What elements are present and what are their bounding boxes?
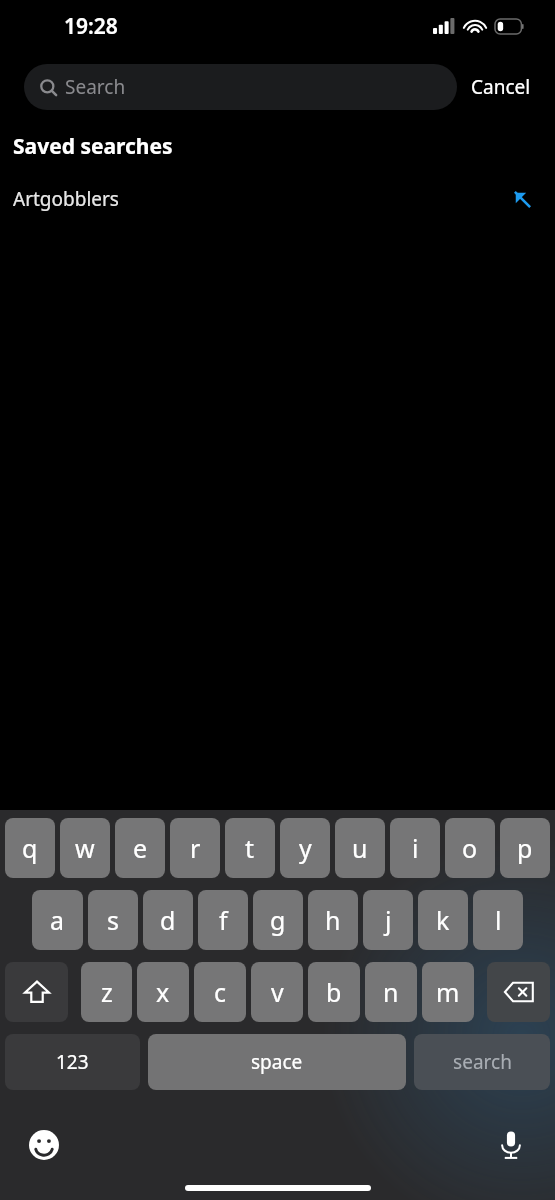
staticText: v xyxy=(271,975,284,1009)
staticText: b xyxy=(326,975,342,1009)
button[interactable]: q xyxy=(5,818,55,878)
button[interactable]: Backspace xyxy=(487,962,550,1022)
staticText: search xyxy=(453,1049,512,1075)
staticText: n xyxy=(383,975,399,1009)
button[interactable]: 123 xyxy=(5,1034,140,1090)
staticText: q xyxy=(22,831,38,865)
staticText: k xyxy=(436,903,450,937)
button[interactable]: w xyxy=(60,818,110,878)
staticText: x xyxy=(156,975,170,1009)
button[interactable]: r xyxy=(170,818,220,878)
button[interactable]: c xyxy=(194,962,246,1022)
staticText: o xyxy=(462,831,478,865)
button[interactable]: j xyxy=(363,890,413,950)
staticText: r xyxy=(190,831,201,865)
staticText: t xyxy=(245,831,255,865)
button[interactable]: x xyxy=(137,962,189,1022)
staticText: h xyxy=(325,903,341,937)
staticText: y xyxy=(299,831,312,865)
button[interactable]: g xyxy=(253,890,303,950)
staticText: s xyxy=(107,903,119,937)
button[interactable]: n xyxy=(365,962,417,1022)
button[interactable]: s xyxy=(88,890,138,950)
button[interactable]: b xyxy=(308,962,360,1022)
staticText: c xyxy=(214,975,227,1009)
staticText: g xyxy=(270,903,286,937)
button[interactable]: p xyxy=(500,818,550,878)
staticText: a xyxy=(50,903,65,937)
button[interactable]: l xyxy=(473,890,523,950)
button[interactable]: a xyxy=(32,890,83,950)
button[interactable]: k xyxy=(418,890,468,950)
button[interactable]: h xyxy=(308,890,358,950)
staticText: Search xyxy=(65,74,126,100)
staticText: space xyxy=(251,1049,303,1075)
staticText: f xyxy=(219,903,228,937)
button[interactable]: t xyxy=(225,818,275,878)
staticText: w xyxy=(75,831,95,865)
button[interactable]: Search xyxy=(24,64,457,110)
staticText: l xyxy=(495,903,502,937)
button[interactable]: Artgobblers xyxy=(0,173,555,225)
button[interactable]: m xyxy=(422,962,474,1022)
staticText: Artgobblers xyxy=(13,186,119,212)
staticText: e xyxy=(133,831,148,865)
staticText: Cancel xyxy=(471,74,531,100)
button[interactable]: space xyxy=(148,1034,406,1090)
staticText: z xyxy=(101,975,113,1009)
button[interactable]: Emoji xyxy=(22,1123,66,1167)
button[interactable]: y xyxy=(280,818,330,878)
button[interactable]: f xyxy=(198,890,248,950)
staticText: 123 xyxy=(56,1049,89,1075)
button[interactable]: v xyxy=(251,962,303,1022)
button[interactable]: d xyxy=(143,890,193,950)
staticText: p xyxy=(517,831,533,865)
staticText: Saved searches xyxy=(13,132,173,161)
staticText: 19:28 xyxy=(64,12,118,41)
staticText: i xyxy=(412,831,419,865)
staticText: u xyxy=(352,831,368,865)
staticText: j xyxy=(385,903,392,937)
button[interactable]: o xyxy=(445,818,495,878)
button[interactable]: Shift xyxy=(5,962,68,1022)
button[interactable]: search xyxy=(414,1034,550,1090)
button[interactable]: z xyxy=(81,962,132,1022)
button[interactable]: i xyxy=(390,818,440,878)
staticText: d xyxy=(160,903,176,937)
staticText: m xyxy=(436,975,460,1009)
button[interactable]: Dictation xyxy=(489,1123,533,1167)
button[interactable]: Cancel xyxy=(457,68,535,106)
button[interactable]: e xyxy=(115,818,165,878)
other: Use this search xyxy=(509,186,535,212)
button[interactable]: u xyxy=(335,818,385,878)
